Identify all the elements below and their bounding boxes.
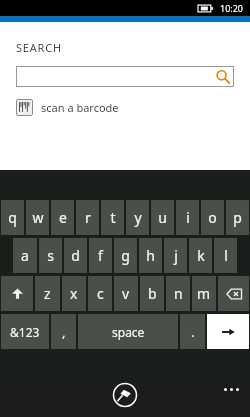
staticText: a	[21, 246, 29, 265]
staticText: scan a barcode	[41, 100, 119, 115]
staticText: l	[224, 246, 228, 265]
button[interactable]: More options	[221, 385, 242, 394]
staticText: SEARCH	[16, 40, 62, 55]
button[interactable]: h	[139, 238, 162, 273]
button[interactable]: Enter	[207, 314, 249, 349]
button[interactable]: y	[126, 200, 149, 235]
staticText: q	[8, 208, 17, 227]
staticText: .	[191, 323, 195, 341]
staticText: t	[110, 208, 116, 227]
staticText: m	[197, 284, 211, 303]
button[interactable]: Pin	[110, 380, 140, 410]
button[interactable]: a	[13, 238, 37, 273]
staticText: y	[134, 208, 142, 227]
button[interactable]: r	[76, 200, 99, 235]
staticText: 10:20	[220, 2, 244, 14]
staticText: r	[85, 208, 91, 227]
button[interactable]: v	[114, 276, 138, 311]
button[interactable]: scan a barcode	[16, 99, 119, 116]
staticText: n	[174, 284, 183, 303]
button[interactable]: space	[78, 314, 178, 349]
staticText: v	[122, 284, 130, 303]
button[interactable]: x	[62, 276, 86, 311]
staticText: k	[197, 246, 205, 265]
staticText: h	[146, 246, 155, 265]
button[interactable]: t	[101, 200, 124, 235]
staticText: z	[44, 284, 51, 303]
button[interactable]: .	[180, 314, 205, 349]
button[interactable]: q	[1, 200, 24, 235]
staticText: &123	[10, 324, 40, 340]
button[interactable]: k	[189, 238, 212, 273]
staticText: e	[59, 208, 67, 227]
button[interactable]: j	[164, 238, 187, 273]
button[interactable]: ,	[51, 314, 76, 349]
button[interactable]: l	[214, 238, 237, 273]
staticText: o	[208, 208, 217, 227]
staticText: u	[158, 208, 167, 227]
button[interactable]: n	[166, 276, 190, 311]
button[interactable]: w	[26, 200, 49, 235]
button[interactable]: Shift	[1, 276, 33, 311]
staticText: g	[121, 246, 130, 265]
button[interactable]: Search	[16, 66, 234, 87]
staticText: d	[71, 246, 80, 265]
staticText: i	[186, 208, 190, 227]
staticText: ,	[62, 323, 66, 341]
staticText: j	[174, 246, 178, 265]
button[interactable]: e	[51, 200, 74, 235]
button[interactable]: s	[39, 238, 62, 273]
button[interactable]: f	[89, 238, 112, 273]
staticText: space	[112, 324, 145, 340]
button[interactable]: &123	[1, 314, 49, 349]
staticText: w	[32, 208, 44, 227]
button[interactable]: i	[176, 200, 199, 235]
staticText: c	[97, 284, 104, 303]
staticText: x	[70, 284, 78, 303]
button[interactable]: p	[226, 200, 249, 235]
staticText: s	[47, 246, 54, 265]
button[interactable]: o	[201, 200, 224, 235]
button[interactable]: d	[64, 238, 87, 273]
button[interactable]: m	[192, 276, 216, 311]
button[interactable]: g	[114, 238, 137, 273]
staticText: f	[98, 246, 103, 265]
staticText: p	[233, 208, 242, 227]
button[interactable]: c	[88, 276, 112, 311]
button[interactable]: z	[35, 276, 60, 311]
staticText: b	[148, 284, 157, 303]
other: Search	[215, 69, 230, 84]
button[interactable]: Backspace	[218, 276, 249, 311]
button[interactable]: b	[140, 276, 164, 311]
button[interactable]: u	[151, 200, 174, 235]
